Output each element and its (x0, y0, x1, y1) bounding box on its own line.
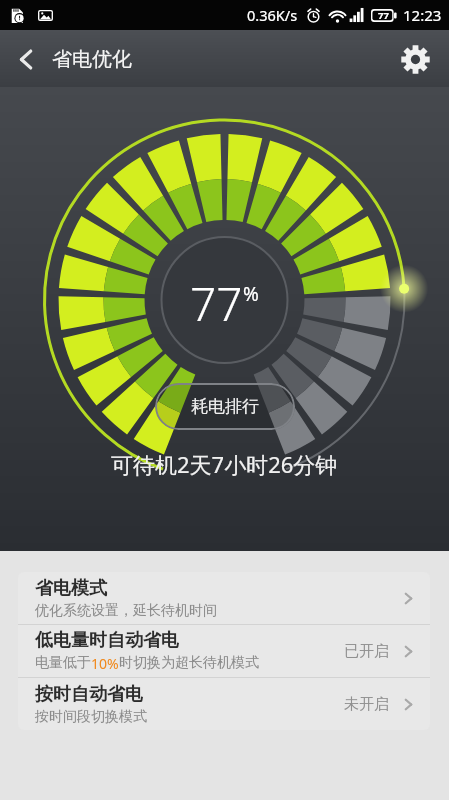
staticText: 已开启 (344, 642, 389, 661)
staticText: 12:23 (403, 5, 442, 25)
button[interactable]: Back (0, 33, 52, 85)
staticText: 时切换为超长待机模式 (119, 654, 259, 672)
button[interactable]: 按时自动省电 (18, 678, 430, 730)
staticText: 低电量时自动省电 (35, 629, 179, 652)
button[interactable]: 低电量时自动省电 (18, 625, 430, 677)
button[interactable]: 耗电排行 (155, 383, 295, 430)
button[interactable]: Settings (389, 33, 441, 85)
staticText: 可待机2天7小时26分钟 (111, 449, 338, 479)
staticText: 电量低于 (35, 654, 91, 672)
staticText: 未开启 (344, 695, 389, 714)
staticText: 0.36K/s (247, 5, 298, 25)
button[interactable]: 省电模式 (18, 572, 430, 624)
staticText: 按时间段切换模式 (35, 708, 147, 726)
staticText: 省电优化 (52, 47, 132, 72)
staticText: 优化系统设置，延长待机时间 (35, 602, 217, 620)
staticText: 耗电排行 (191, 396, 259, 417)
staticText: 10% (91, 654, 119, 673)
staticText: 省电模式 (35, 577, 107, 600)
staticText: % (243, 281, 259, 307)
staticText: 77 (378, 9, 389, 22)
staticText: 77 (190, 272, 243, 335)
staticText: 按时自动省电 (35, 683, 143, 706)
